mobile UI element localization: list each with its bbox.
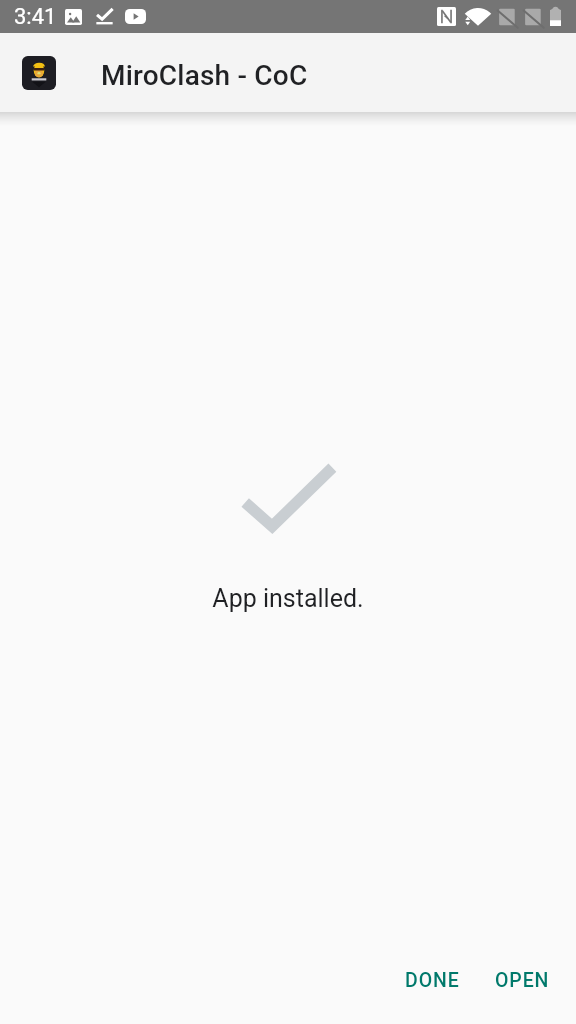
- other: No mobile signal, SIM 1: [498, 8, 517, 26]
- staticText: MiroClash - CoC: [101, 59, 308, 92]
- other: YouTube: [125, 9, 146, 24]
- staticText: 3:41: [14, 4, 57, 30]
- staticText: OPEN: [495, 969, 550, 992]
- other: MiroClash - CoC app icon: [22, 56, 56, 90]
- other: Installed successfully: [236, 458, 340, 540]
- other: Download complete: [96, 8, 113, 26]
- button[interactable]: OPEN: [487, 960, 558, 1001]
- button[interactable]: DONE: [397, 960, 468, 1001]
- other: Battery low: [550, 7, 561, 26]
- other: NFC enabled: [437, 7, 456, 26]
- other: Wi-Fi connected: [465, 7, 491, 26]
- other: No mobile signal, SIM 2: [524, 8, 543, 26]
- staticText: DONE: [405, 969, 460, 992]
- other: Screenshot saved: [65, 9, 82, 25]
- staticText: App installed.: [212, 584, 364, 613]
